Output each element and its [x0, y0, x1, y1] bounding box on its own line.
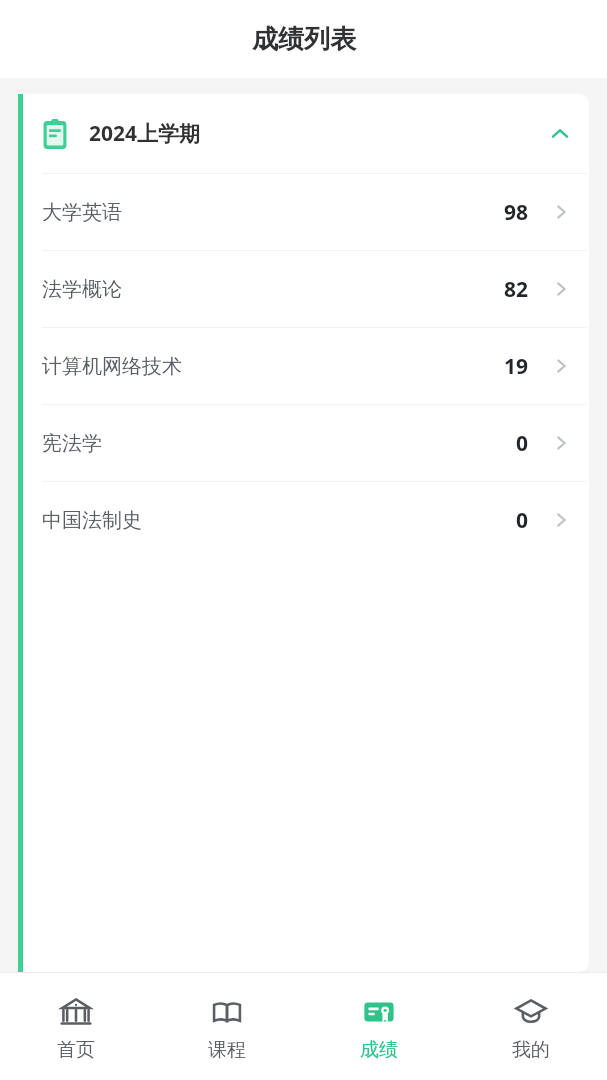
- staticText: 19: [504, 352, 529, 381]
- staticText: 我的: [512, 1038, 550, 1062]
- staticText: 计算机网络技术: [42, 354, 182, 379]
- button[interactable]: 我的: [455, 973, 607, 1080]
- staticText: 大学英语: [42, 200, 122, 225]
- button[interactable]: 大学英语: [23, 174, 589, 250]
- staticText: 中国法制史: [42, 508, 142, 533]
- button[interactable]: 法学概论: [23, 251, 589, 327]
- staticText: 98: [504, 198, 529, 227]
- staticText: 0: [516, 429, 529, 458]
- staticText: 82: [504, 275, 529, 304]
- button[interactable]: 宪法学: [23, 405, 589, 481]
- staticText: 2024上学期: [89, 119, 201, 148]
- staticText: 0: [516, 506, 529, 535]
- button[interactable]: 计算机网络技术: [23, 328, 589, 404]
- staticText: 课程: [208, 1038, 246, 1062]
- button[interactable]: 课程: [151, 973, 303, 1080]
- button[interactable]: 成绩: [303, 973, 455, 1080]
- button[interactable]: 中国法制史: [23, 482, 589, 558]
- button[interactable]: 首页: [0, 973, 151, 1080]
- staticText: 成绩列表: [252, 23, 356, 56]
- staticText: 宪法学: [42, 431, 102, 456]
- button[interactable]: 2024上学期: [23, 94, 589, 173]
- staticText: 成绩: [360, 1038, 398, 1062]
- staticText: 首页: [57, 1038, 95, 1062]
- staticText: 法学概论: [42, 277, 122, 302]
